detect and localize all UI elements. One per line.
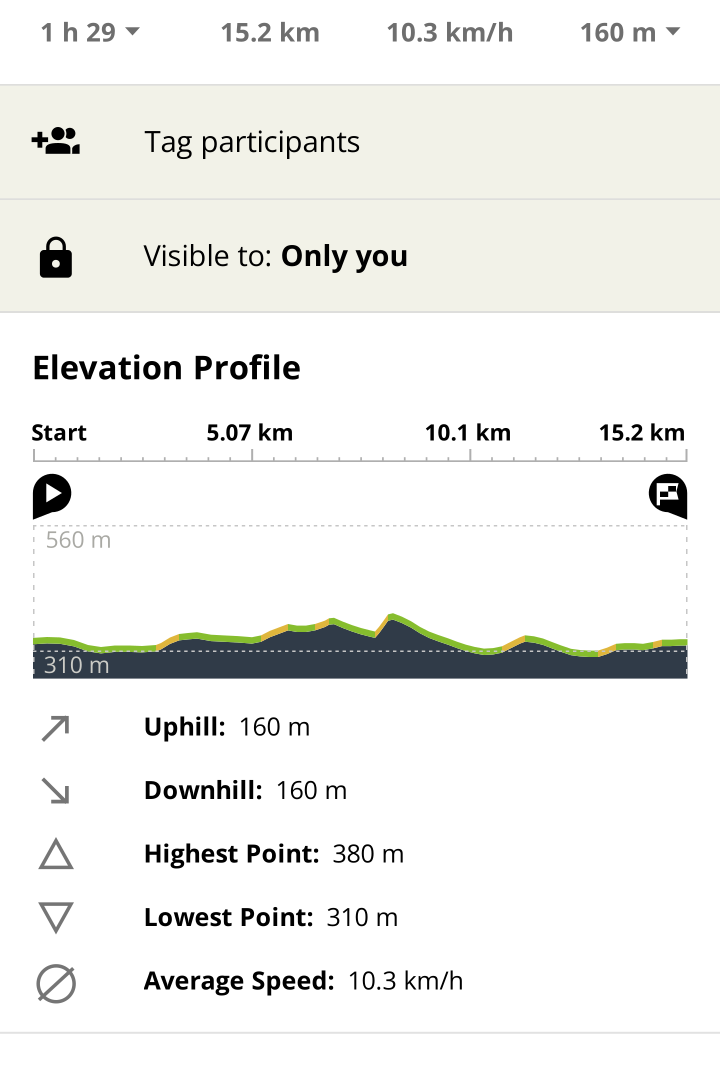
staticText: 10.1 km: [424, 416, 511, 447]
staticText: Highest Point: 380 m: [143, 836, 404, 869]
button[interactable]: 160 m: [540, 0, 720, 84]
staticText: 310 m: [44, 648, 110, 680]
staticText: 5.07 km: [206, 416, 293, 447]
staticText: 560 m: [45, 523, 111, 554]
staticText: Tag participants: [144, 121, 360, 161]
button[interactable]: Visible to: Only you: [0, 200, 720, 311]
button[interactable]: 1 h 29: [0, 0, 180, 84]
button[interactable]: 10.3 km/h: [360, 0, 540, 84]
staticText: Elevation Profile: [32, 344, 301, 389]
staticText: Start: [31, 416, 87, 447]
staticText: Lowest Point: 310 m: [143, 900, 398, 933]
staticText: Uphill: 160 m: [143, 709, 310, 742]
staticText: Downhill: 160 m: [143, 773, 347, 806]
staticText: Visible to: Only you: [143, 235, 408, 274]
staticText: Average Speed: 10.3 km/h: [143, 963, 463, 996]
staticText: 1 h 29: [40, 14, 116, 49]
button[interactable]: 15.2 km: [180, 0, 360, 84]
staticText: 160 m: [579, 14, 656, 49]
staticText: 15.2 km: [220, 14, 320, 49]
staticText: 10.3 km/h: [386, 14, 514, 49]
button[interactable]: Tag participants: [0, 86, 720, 198]
staticText: 15.2 km: [599, 416, 686, 447]
